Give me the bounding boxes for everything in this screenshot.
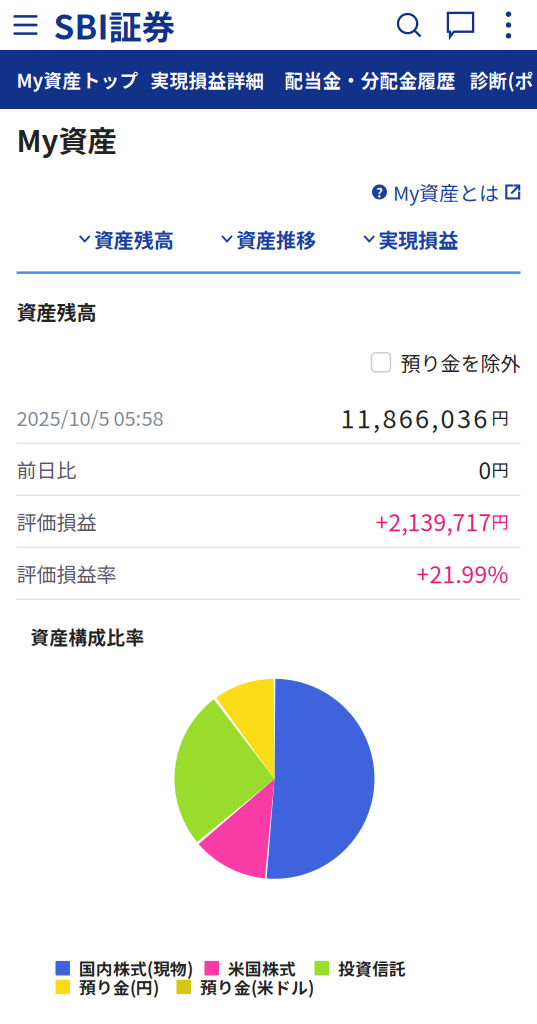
- button[interactable]: 診断(ポ: [469, 50, 537, 109]
- staticText: 0: [478, 453, 491, 486]
- staticText: 円: [491, 405, 508, 430]
- staticText: 2025/10/5 05:58: [16, 403, 163, 432]
- staticText: My資産とは: [393, 177, 499, 206]
- staticText: 預り金(円): [79, 975, 159, 999]
- staticText: 資産構成比率: [30, 623, 144, 650]
- button[interactable]: Messages: [434, 0, 486, 50]
- staticText: ?: [376, 182, 383, 202]
- staticText: +2,139,717: [375, 505, 491, 538]
- button[interactable]: Search: [383, 0, 434, 50]
- button[interactable]: 実現損益詳細: [150, 50, 284, 109]
- button[interactable]: 配当金・分配金履歴: [284, 50, 469, 109]
- staticText: 預り金を除外: [400, 348, 520, 377]
- staticText: 資産推移: [236, 224, 316, 253]
- staticText: 実現損益詳細: [150, 66, 264, 93]
- staticText: 診断(ポ: [469, 66, 533, 93]
- button[interactable]: Menu: [0, 0, 53, 50]
- staticText: 評価損益: [16, 507, 96, 536]
- button[interactable]: 実現損益: [363, 224, 458, 253]
- staticText: +21.99%: [416, 557, 508, 590]
- staticText: 資産残高: [16, 297, 96, 326]
- staticText: 米国株式: [228, 956, 296, 980]
- staticText: 11,866,036: [340, 399, 487, 436]
- staticText: 預り金(米ドル): [200, 975, 314, 999]
- staticText: 資産残高: [94, 224, 174, 253]
- staticText: 実現損益: [378, 224, 458, 253]
- staticText: 円: [491, 509, 508, 534]
- staticText: 国内株式(現物): [79, 956, 193, 980]
- staticText: 円: [491, 457, 508, 482]
- staticText: 前日比: [16, 455, 76, 484]
- button[interactable]: My資産トップ: [16, 50, 150, 109]
- staticText: 評価損益率: [16, 559, 116, 588]
- button[interactable]: ?: [372, 177, 520, 206]
- staticText: My資産: [16, 118, 116, 160]
- button[interactable]: More: [486, 0, 537, 50]
- staticText: 投資信託: [338, 956, 406, 980]
- button[interactable]: 預り金を除外: [371, 348, 520, 377]
- staticText: 配当金・分配金履歴: [284, 66, 455, 93]
- button[interactable]: 資産推移: [221, 224, 316, 253]
- button[interactable]: 資産残高: [79, 224, 174, 253]
- staticText: My資産トップ: [16, 66, 138, 93]
- staticText: SBI証券: [53, 1, 174, 49]
